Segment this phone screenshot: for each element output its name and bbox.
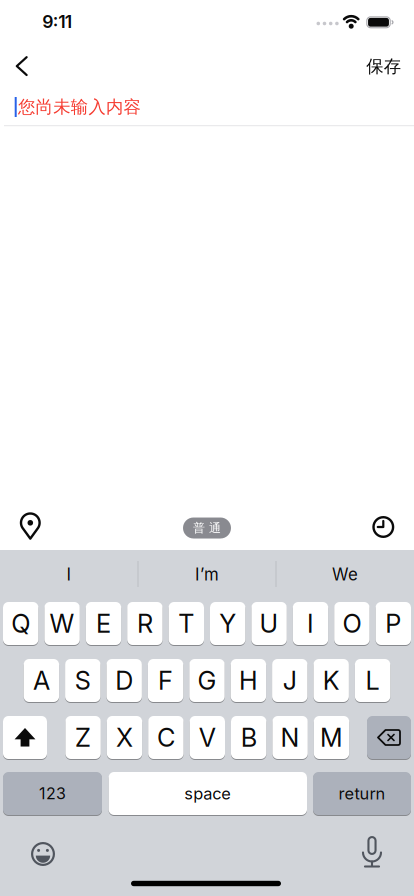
staticText: I <box>307 608 314 639</box>
staticText: J <box>283 665 297 696</box>
staticText: I’m <box>195 564 219 585</box>
staticText: O <box>342 608 361 639</box>
staticText: T <box>178 608 194 639</box>
staticText: return <box>338 784 385 803</box>
staticText: A <box>33 665 50 696</box>
staticText: 123 <box>39 784 66 803</box>
staticText: S <box>75 665 91 696</box>
staticText: Z <box>75 722 91 753</box>
staticText: H <box>239 665 258 696</box>
staticText: R <box>137 608 153 639</box>
staticText: C <box>157 722 175 753</box>
staticText: U <box>260 608 279 639</box>
staticText: W <box>50 608 75 639</box>
staticText: X <box>116 722 133 753</box>
staticText: F <box>158 665 173 696</box>
staticText: E <box>96 608 111 639</box>
staticText: B <box>241 722 257 753</box>
staticText: N <box>281 722 300 753</box>
staticText: M <box>320 722 343 753</box>
staticText: G <box>197 665 216 696</box>
staticText: space <box>184 784 231 803</box>
staticText: Y <box>219 608 236 639</box>
staticText: Q <box>11 608 30 639</box>
staticText: 保存 <box>366 56 401 77</box>
staticText: V <box>199 722 216 753</box>
staticText: P <box>385 608 401 639</box>
staticText: We <box>332 564 358 585</box>
staticText: 普 通 <box>193 521 221 535</box>
staticText: 9:11 <box>42 11 72 32</box>
staticText: I <box>66 564 71 585</box>
staticText: K <box>323 665 340 696</box>
staticText: L <box>366 665 380 696</box>
staticText: D <box>115 665 133 696</box>
staticText: 您尚未输入内容 <box>18 96 141 118</box>
